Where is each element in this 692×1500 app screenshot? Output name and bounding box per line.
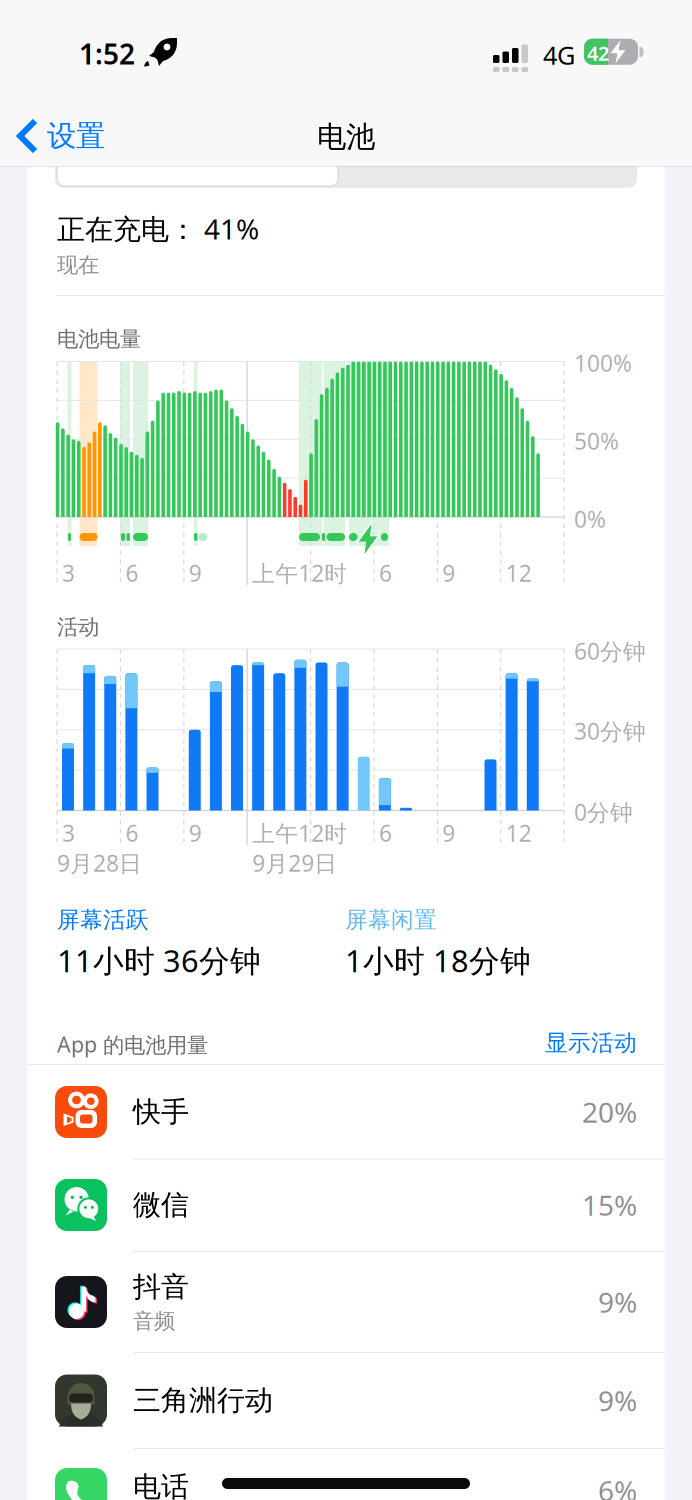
- staticText: 6: [379, 818, 392, 848]
- staticText: 9: [189, 558, 202, 588]
- button[interactable]: 电话: [27, 1449, 664, 1500]
- staticText: 100%: [574, 348, 632, 378]
- staticText: 12: [506, 818, 532, 848]
- staticText: 音频: [133, 1308, 175, 1334]
- staticText: 设置: [47, 118, 105, 154]
- staticText: 上午12时: [252, 558, 347, 588]
- staticText: 9月29日: [252, 848, 337, 878]
- staticText: 15%: [582, 1186, 637, 1224]
- button[interactable]: 显示活动: [545, 1029, 637, 1057]
- staticText: 9: [442, 558, 455, 588]
- staticText: 6: [125, 558, 138, 588]
- staticText: 11小时 36分钟: [57, 940, 261, 981]
- staticText: 12: [506, 558, 532, 588]
- staticText: 9%: [598, 1382, 637, 1419]
- button[interactable]: 微信: [27, 1159, 664, 1251]
- staticText: 上午12时: [252, 818, 347, 848]
- staticText: 3: [62, 558, 75, 588]
- staticText: 活动: [57, 614, 99, 640]
- staticText: 30分钟: [574, 716, 646, 746]
- staticText: App 的电池用量: [57, 1030, 208, 1058]
- staticText: 0分钟: [574, 797, 633, 827]
- staticText: 60分钟: [574, 636, 646, 666]
- staticText: 6: [125, 818, 138, 848]
- staticText: 电话: [133, 1470, 189, 1500]
- staticText: 6%: [598, 1472, 637, 1500]
- staticText: 42: [587, 40, 609, 66]
- staticText: 1小时 18分钟: [345, 940, 531, 981]
- staticText: 抖音: [133, 1270, 189, 1304]
- button[interactable]: 三角洲行动: [27, 1353, 664, 1448]
- staticText: 微信: [133, 1188, 189, 1222]
- staticText: 1:52: [79, 35, 135, 72]
- staticText: 屏幕活跃: [57, 906, 149, 934]
- staticText: 显示活动: [545, 1029, 637, 1057]
- staticText: 快手: [133, 1095, 189, 1129]
- staticText: 0%: [574, 504, 606, 534]
- staticText: 4G: [543, 38, 575, 72]
- staticText: 三角洲行动: [133, 1383, 273, 1418]
- button[interactable]: 返回设置: [16, 118, 105, 154]
- staticText: 20%: [582, 1093, 637, 1131]
- staticText: 9月28日: [57, 848, 142, 878]
- staticText: 50%: [574, 426, 619, 456]
- button[interactable]: 快手: [27, 1065, 664, 1158]
- staticText: 电池: [317, 119, 375, 155]
- staticText: 9: [442, 818, 455, 848]
- staticText: 现在: [57, 252, 99, 278]
- staticText: 正在充电： 41%: [57, 210, 259, 247]
- staticText: 9%: [598, 1283, 637, 1321]
- staticText: 9: [189, 818, 202, 848]
- staticText: 屏幕闲置: [345, 906, 437, 934]
- staticText: 6: [379, 558, 392, 588]
- staticText: 电池电量: [57, 326, 141, 352]
- button[interactable]: 最近24小时: [57, 150, 338, 186]
- button[interactable]: 抖音: [27, 1252, 664, 1352]
- staticText: 3: [62, 818, 75, 848]
